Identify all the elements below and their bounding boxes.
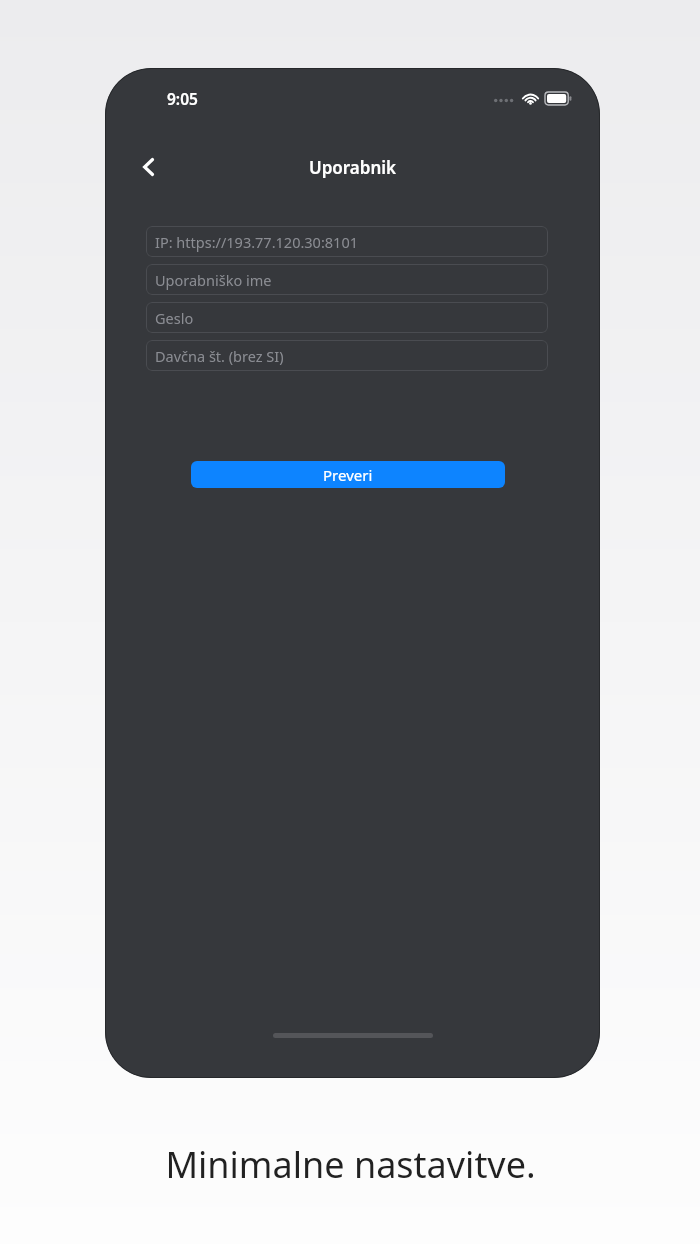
staticText: Uporabnik bbox=[309, 156, 397, 179]
staticText: Uporabniško ime bbox=[155, 270, 272, 290]
staticText: Geslo bbox=[155, 308, 194, 328]
staticText: 9:05 bbox=[167, 88, 198, 109]
button[interactable]: Davčna št. (brez SI) bbox=[146, 340, 548, 371]
staticText: Preveri bbox=[323, 465, 373, 485]
staticText: Davčna št. (brez SI) bbox=[155, 346, 284, 366]
button[interactable]: Back bbox=[127, 145, 171, 189]
staticText: IP: https://193.77.120.30:8101 bbox=[155, 232, 358, 252]
button[interactable]: Uporabniško ime bbox=[146, 264, 548, 295]
staticText: Minimalne nastavitve. bbox=[165, 1140, 536, 1189]
button[interactable]: IP: https://193.77.120.30:8101 bbox=[146, 226, 548, 257]
button[interactable]: Geslo bbox=[146, 302, 548, 333]
button[interactable]: Preveri bbox=[191, 461, 505, 488]
